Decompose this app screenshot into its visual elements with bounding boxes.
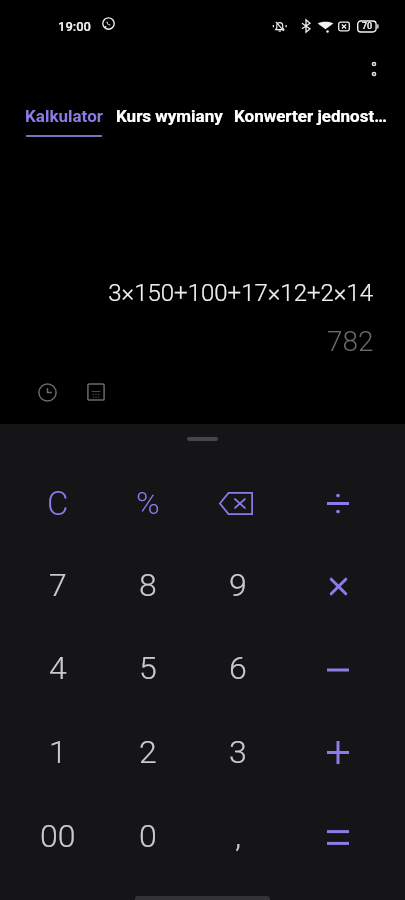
button[interactable]: More options (356, 51, 392, 87)
staticText: % (136, 484, 160, 522)
button[interactable]: 7 (14, 545, 102, 625)
button[interactable]: 1 (14, 712, 102, 792)
staticText: Kalkulator (25, 106, 103, 126)
button[interactable]: 5 (104, 628, 192, 708)
staticText: 3×150+100+17×12+2×14 (108, 279, 373, 307)
button[interactable]: 9 (194, 545, 282, 625)
button[interactable]: 0 (104, 796, 192, 876)
staticText: 6 (229, 649, 247, 687)
button[interactable]: Multiply (294, 545, 382, 625)
staticText: 00 (40, 817, 76, 855)
staticText: C (47, 484, 69, 523)
button[interactable]: , (194, 796, 282, 876)
button[interactable]: Equals (294, 796, 382, 876)
staticText: 9 (229, 566, 247, 604)
staticText: Kurs wymiany (116, 106, 223, 126)
staticText: 70 (362, 21, 373, 32)
staticText: 19:00 (58, 19, 91, 34)
staticText: 3 (229, 733, 247, 771)
staticText: 7 (49, 566, 67, 604)
button[interactable]: 2 (104, 712, 192, 792)
staticText: 8 (139, 566, 157, 604)
button[interactable]: Calculator (78, 374, 114, 410)
button[interactable]: Plus (294, 712, 382, 792)
button[interactable]: 8 (104, 545, 192, 625)
button[interactable]: % (104, 463, 192, 543)
button[interactable]: Backspace (194, 463, 282, 543)
button[interactable]: Kalkulator (24, 106, 104, 138)
staticText: 0 (139, 817, 157, 855)
staticText: 782 (327, 325, 374, 358)
button[interactable]: 4 (14, 628, 102, 708)
staticText: 2 (139, 733, 157, 771)
staticText: , (235, 817, 242, 855)
staticText: 5 (139, 649, 157, 687)
button[interactable]: 6 (194, 628, 282, 708)
button[interactable]: Kurs wymiany (116, 106, 224, 138)
staticText: 4 (49, 649, 67, 687)
button[interactable]: Minus (294, 628, 382, 708)
button[interactable]: 00 (14, 796, 102, 876)
button[interactable]: Divide (294, 463, 382, 543)
button[interactable]: C (14, 463, 102, 543)
button[interactable]: 3 (194, 712, 282, 792)
button[interactable]: Konwerter jednost… (234, 106, 405, 138)
staticText: 1 (49, 733, 67, 771)
button[interactable]: History (29, 374, 65, 410)
staticText: Konwerter jednost… (234, 106, 387, 126)
